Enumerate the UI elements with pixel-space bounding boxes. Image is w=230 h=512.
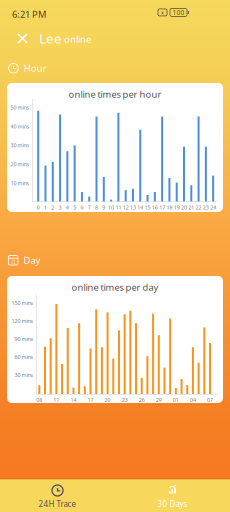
staticText: 0 [37, 204, 40, 211]
staticText: 18 [166, 204, 172, 211]
staticText: 01 [173, 396, 179, 404]
staticText: 90 mins [14, 335, 33, 343]
staticText: 14 [70, 396, 76, 404]
staticText: 16 [152, 204, 158, 211]
staticText: 150 mins [11, 299, 33, 307]
staticText: 30 Days [157, 499, 187, 509]
staticText: 10 [108, 204, 114, 211]
staticText: 6 [80, 204, 83, 211]
staticText: 4 [66, 204, 69, 211]
staticText: Lee [39, 29, 62, 47]
button[interactable]: 24H Trace [0, 479, 115, 512]
staticText: 120 mins [11, 317, 33, 325]
staticText: 20 [181, 204, 187, 211]
staticText: 17 [159, 204, 165, 211]
staticText: 14 [137, 204, 143, 211]
staticText: 11 [115, 204, 121, 211]
staticText: 60 mins [14, 353, 33, 361]
staticText: 1 [44, 204, 47, 211]
staticText: 21 [188, 204, 194, 211]
staticText: online [64, 33, 91, 45]
staticText: 17 [87, 396, 93, 404]
staticText: 2 [51, 204, 54, 211]
staticText: 12 [123, 204, 129, 211]
staticText: 30 mins [10, 142, 29, 149]
staticText: 30 mins [14, 371, 33, 379]
staticText: 40 mins [10, 123, 29, 130]
staticText: 15 [144, 204, 150, 211]
staticText: 100 [172, 8, 184, 17]
staticText: 50 mins [10, 104, 29, 111]
staticText: 6:21 PM [12, 8, 46, 20]
staticText: 24 [210, 204, 216, 211]
staticText: 29 [156, 396, 162, 404]
staticText: 04 [190, 396, 196, 404]
staticText: Hour [24, 62, 47, 74]
staticText: online times per day [71, 281, 158, 293]
staticText: 13 [130, 204, 136, 211]
staticText: 20 mins [10, 161, 29, 168]
button[interactable]: Close [12, 28, 33, 49]
staticText: 23 [203, 204, 209, 211]
staticText: x [161, 9, 164, 16]
staticText: 9 [102, 204, 105, 211]
staticText: 11 [53, 396, 59, 404]
staticText: 10 mins [10, 180, 29, 187]
staticText: online times per hour [68, 88, 161, 100]
staticText: 5 [73, 204, 76, 211]
staticText: 26 [139, 396, 145, 404]
staticText: 19 [174, 204, 180, 211]
staticText: 07 [207, 396, 213, 404]
staticText: 23 [122, 396, 128, 404]
staticText: 7 [88, 204, 91, 211]
staticText: 08 [36, 396, 42, 404]
staticText: 20 [105, 396, 111, 404]
staticText: 3 [59, 204, 62, 211]
staticText: Day [23, 254, 40, 266]
staticText: 22 [196, 204, 202, 211]
staticText: 24H Trace [38, 499, 76, 509]
staticText: 8 [95, 204, 98, 211]
button[interactable]: 30 Days [115, 479, 230, 512]
